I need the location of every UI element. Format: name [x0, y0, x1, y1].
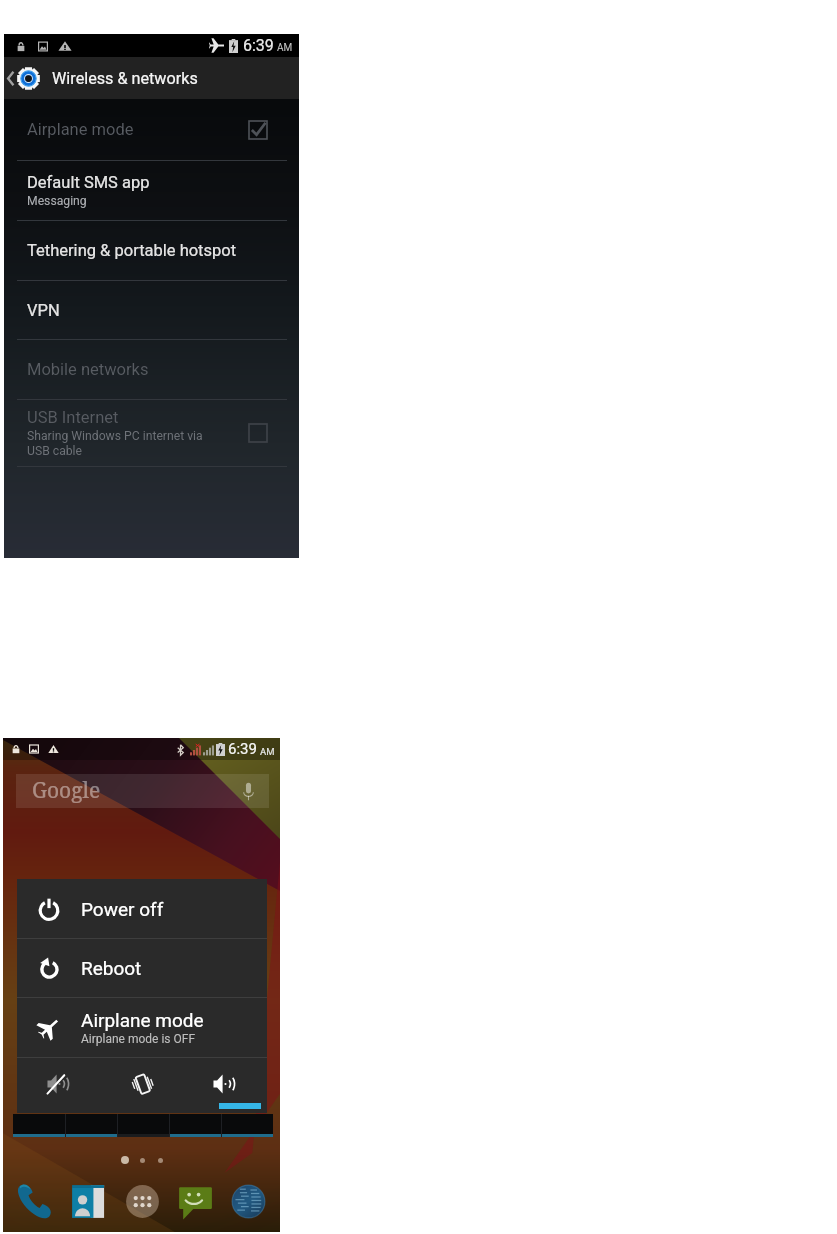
- button[interactable]: Messaging: [175, 1181, 216, 1222]
- staticText: 6:39: [243, 36, 274, 55]
- staticText: VPN: [27, 301, 60, 320]
- button[interactable]: USB Internet: [4, 400, 299, 466]
- button[interactable]: Vibrate: [115, 1067, 169, 1101]
- button[interactable]: Silent: [32, 1067, 86, 1101]
- button[interactable]: People: [68, 1181, 109, 1222]
- button[interactable]: Power off: [17, 879, 267, 938]
- button[interactable]: Airplane mode: [4, 99, 299, 160]
- button[interactable]: VPN: [4, 281, 299, 339]
- staticText: Tethering & portable hotspot: [27, 241, 237, 260]
- staticText: Airplane mode: [81, 1009, 204, 1031]
- button[interactable]: Reboot: [17, 939, 267, 997]
- staticText: Power off: [81, 898, 164, 920]
- staticText: Airplane mode is OFF: [81, 1032, 196, 1046]
- other: Voice search: [243, 782, 254, 801]
- staticText: 6:39: [228, 740, 257, 758]
- other: Back: [7, 71, 14, 86]
- staticText: Airplane mode: [27, 120, 134, 139]
- staticText: Mobile networks: [27, 360, 149, 379]
- staticText: Wireless & networks: [52, 69, 198, 88]
- button[interactable]: Airplane mode: [17, 998, 267, 1057]
- staticText: Messaging: [27, 194, 87, 208]
- button[interactable]: Sound on: [198, 1067, 252, 1101]
- button[interactable]: Tethering & portable hotspot: [4, 221, 299, 280]
- staticText: Default SMS app: [27, 173, 150, 192]
- button[interactable]: Default SMS app: [4, 161, 299, 220]
- staticText: USB Internet: [27, 408, 119, 427]
- button[interactable]: Browser: [228, 1181, 269, 1222]
- staticText: AM: [277, 42, 293, 54]
- button[interactable]: Mobile networks: [4, 340, 299, 399]
- button[interactable]: Phone: [15, 1181, 56, 1222]
- staticText: Sharing Windows PC internet via USB cabl…: [27, 429, 203, 458]
- staticText: Reboot: [81, 957, 142, 979]
- button[interactable]: Google: [16, 774, 269, 808]
- staticText: Google: [32, 776, 101, 805]
- button[interactable]: Back: [4, 57, 299, 99]
- staticText: AM: [260, 746, 275, 757]
- button[interactable]: Apps: [122, 1181, 163, 1222]
